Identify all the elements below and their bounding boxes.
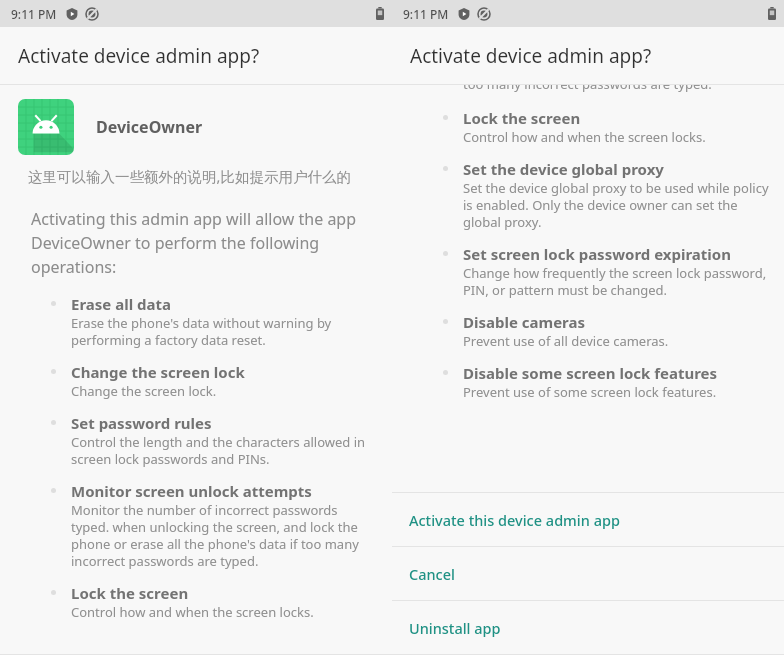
staticText: 9:11 PM [403, 6, 449, 22]
staticText: Change how frequently the screen lock pa… [463, 264, 770, 299]
staticText: Uninstall app [409, 618, 501, 638]
staticText: Control how and when the screen locks. [71, 603, 314, 621]
button[interactable]: Uninstall app [392, 601, 784, 654]
staticText: Lock the screen [463, 108, 581, 128]
staticText: Set password rules [71, 413, 212, 433]
staticText: Control how and when the screen locks. [463, 128, 706, 146]
staticText: DeviceOwner [96, 116, 203, 138]
staticText: Activate device admin app? [18, 43, 260, 69]
staticText: Monitor the number of incorrect password… [71, 501, 378, 570]
staticText: Erase the phone's data without warning b… [71, 314, 378, 349]
staticText: Cancel [409, 564, 455, 584]
staticText: Set the device global proxy to be used w… [463, 179, 770, 231]
staticText: too many incorrect passwords are typed. [463, 85, 712, 93]
staticText: Activate this device admin app [409, 510, 620, 530]
staticText: Lock the screen [71, 583, 189, 603]
staticText: Change the screen lock [71, 362, 245, 382]
staticText: Disable cameras [463, 312, 586, 332]
staticText: Prevent use of all device cameras. [463, 332, 669, 350]
button[interactable]: Activate this device admin app [392, 493, 784, 546]
staticText: Change the screen lock. [71, 382, 217, 400]
staticText: Activating this admin app will allow the… [31, 208, 366, 278]
staticText: Set screen lock password expiration [463, 244, 731, 264]
staticText: Prevent use of some screen lock features… [463, 383, 717, 401]
staticText: 这里可以输入一些额外的说明,比如提示用户什么的 [28, 166, 351, 186]
staticText: Erase all data [71, 294, 171, 314]
button[interactable]: Cancel [392, 547, 784, 600]
staticText: Disable some screen lock features [463, 363, 718, 383]
staticText: 9:11 PM [11, 6, 57, 22]
staticText: Control the length and the characters al… [71, 433, 378, 468]
staticText: Activate device admin app? [410, 43, 652, 69]
staticText: Set the device global proxy [463, 159, 664, 179]
staticText: Monitor screen unlock attempts [71, 481, 312, 501]
